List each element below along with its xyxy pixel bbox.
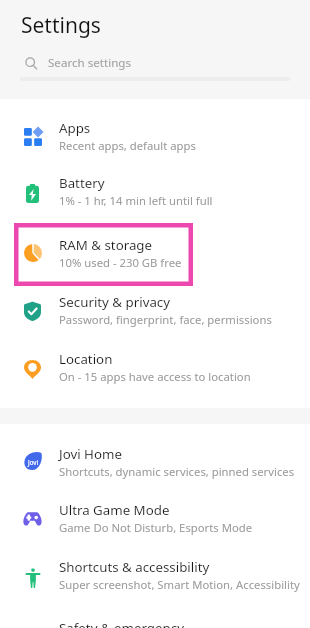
staticText: Shortcuts & accessibility xyxy=(59,558,210,576)
staticText: Jovi Home xyxy=(59,445,122,463)
button[interactable]: Jovi xyxy=(0,434,310,489)
staticText: Battery xyxy=(59,174,105,192)
button[interactable]: Apps xyxy=(0,108,310,163)
button[interactable]: Ultra Game Mode xyxy=(0,490,310,545)
staticText: On - 15 apps have access to location xyxy=(59,369,251,384)
staticText: Jovi xyxy=(28,458,39,466)
staticText: Location xyxy=(59,350,113,368)
staticText: Apps xyxy=(59,119,91,137)
staticText: Game Do Not Disturb, Esports Mode xyxy=(59,520,253,535)
staticText: Shortcuts, dynamic services, pinned serv… xyxy=(59,464,295,479)
staticText: Security & privacy xyxy=(59,293,171,311)
staticText: Settings xyxy=(21,11,101,40)
staticText: RAM & storage xyxy=(59,236,153,254)
staticText: Super screenshot, Smart Motion, Accessib… xyxy=(59,577,300,592)
button[interactable]: Shortcuts & accessibility xyxy=(0,547,310,602)
button[interactable]: RAM & storage xyxy=(0,225,310,280)
button[interactable]: Safety & emergency xyxy=(0,608,310,628)
button[interactable]: Battery xyxy=(0,163,310,218)
staticText: Safety & emergency xyxy=(59,619,184,628)
staticText: Ultra Game Mode xyxy=(59,501,170,519)
staticText: Password, fingerprint, face, permissions xyxy=(59,312,272,327)
button[interactable]: Search settings xyxy=(0,51,310,75)
staticText: 1% - 1 hr, 14 min left until full xyxy=(59,193,213,208)
button[interactable]: Location xyxy=(0,339,310,394)
button[interactable]: Security & privacy xyxy=(0,282,310,337)
staticText: Search settings xyxy=(48,55,132,71)
staticText: 10% used - 230 GB free xyxy=(59,255,182,270)
staticText: Recent apps, default apps xyxy=(59,138,196,153)
